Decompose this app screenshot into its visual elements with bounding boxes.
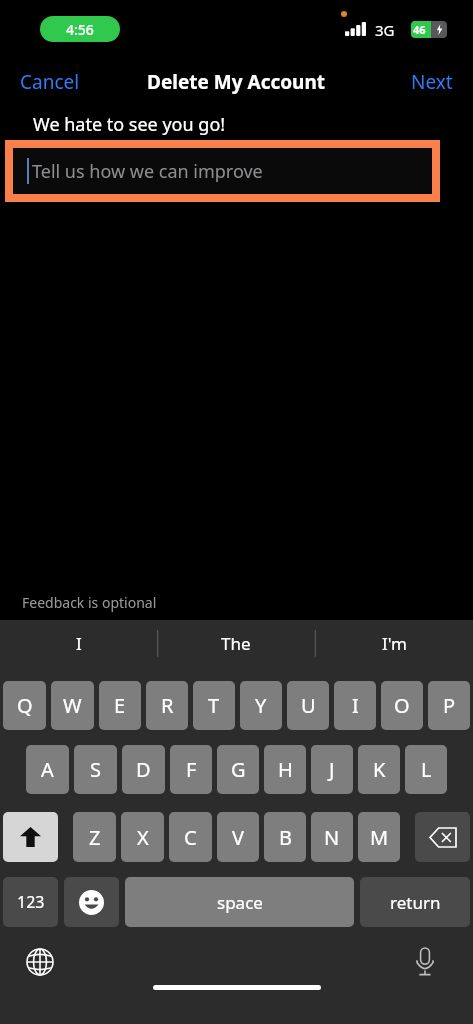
staticText: space: [217, 891, 263, 914]
button[interactable]: N: [311, 812, 353, 862]
button[interactable]: return: [360, 877, 470, 927]
button[interactable]: I: [0, 620, 157, 666]
button[interactable]: space: [125, 877, 354, 927]
button[interactable]: Tell us how we can improve: [13, 148, 432, 194]
staticText: G: [231, 756, 246, 783]
button[interactable]: V: [217, 812, 259, 862]
staticText: 4:56: [66, 20, 94, 39]
button[interactable]: J: [311, 745, 353, 794]
button[interactable]: The: [157, 620, 315, 666]
staticText: I: [352, 692, 359, 719]
staticText: P: [443, 692, 456, 719]
button[interactable]: Next: [401, 63, 463, 101]
button[interactable]: 123: [3, 877, 58, 927]
staticText: L: [421, 756, 432, 783]
staticText: Q: [17, 692, 33, 719]
staticText: A: [41, 756, 54, 783]
staticText: I'm: [382, 632, 407, 655]
staticText: F: [186, 756, 197, 783]
button[interactable]: A: [26, 745, 69, 794]
button[interactable]: G: [217, 745, 259, 794]
staticText: 46: [413, 22, 426, 37]
staticText: Cancel: [20, 69, 80, 95]
button[interactable]: R: [146, 681, 188, 730]
button[interactable]: S: [74, 745, 117, 794]
button[interactable]: C: [169, 812, 212, 862]
staticText: return: [390, 891, 441, 914]
staticText: 123: [17, 891, 45, 913]
button[interactable]: Backspace: [415, 812, 470, 862]
button[interactable]: W: [51, 681, 94, 730]
staticText: W: [63, 692, 82, 719]
staticText: The: [221, 632, 251, 655]
button[interactable]: B: [264, 812, 306, 862]
button[interactable]: D: [122, 745, 165, 794]
staticText: U: [301, 692, 316, 719]
button[interactable]: P: [428, 681, 470, 730]
button[interactable]: X: [121, 812, 164, 862]
button[interactable]: M: [358, 812, 400, 862]
staticText: T: [208, 692, 220, 719]
button[interactable]: K: [358, 745, 400, 794]
staticText: V: [232, 824, 244, 851]
button[interactable]: Z: [73, 812, 116, 862]
button[interactable]: L: [405, 745, 447, 794]
button[interactable]: Y: [240, 681, 282, 730]
staticText: M: [370, 824, 389, 851]
button[interactable]: U: [287, 681, 329, 730]
staticText: Z: [89, 824, 101, 851]
button[interactable]: I: [334, 681, 376, 730]
button[interactable]: E: [99, 681, 141, 730]
staticText: C: [184, 824, 197, 851]
staticText: O: [394, 692, 410, 719]
button[interactable]: I'm: [315, 620, 473, 666]
staticText: 3G: [375, 20, 395, 40]
button[interactable]: Q: [3, 681, 46, 730]
staticText: We hate to see you go!: [33, 112, 226, 137]
staticText: Next: [411, 69, 453, 95]
button[interactable]: H: [264, 745, 306, 794]
button[interactable]: F: [170, 745, 212, 794]
button[interactable]: Dictation: [407, 944, 443, 980]
button[interactable]: Cancel: [10, 63, 90, 101]
staticText: H: [278, 756, 293, 783]
button[interactable]: Change keyboard: [22, 944, 58, 980]
button[interactable]: T: [193, 681, 235, 730]
button[interactable]: O: [381, 681, 423, 730]
staticText: Delete My Account: [147, 69, 326, 95]
staticText: J: [329, 756, 335, 783]
staticText: N: [324, 824, 340, 851]
staticText: D: [136, 756, 151, 783]
button[interactable]: Shift: [3, 812, 58, 862]
staticText: E: [114, 692, 126, 719]
staticText: B: [279, 824, 292, 851]
button[interactable]: Emoji: [64, 877, 119, 927]
staticText: X: [137, 824, 149, 851]
staticText: Tell us how we can improve: [32, 159, 263, 184]
staticText: Feedback is optional: [22, 593, 157, 612]
staticText: K: [373, 756, 386, 783]
staticText: I: [76, 632, 82, 655]
staticText: Y: [255, 692, 267, 719]
staticText: S: [90, 756, 101, 783]
staticText: R: [161, 692, 174, 719]
